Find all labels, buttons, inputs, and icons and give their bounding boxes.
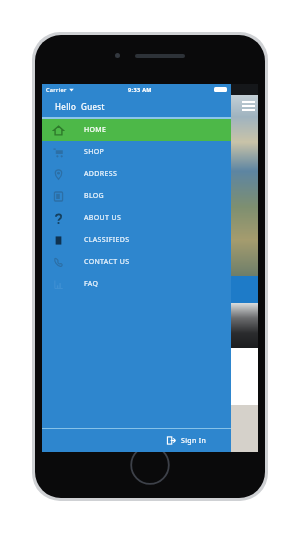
button[interactable]: HOME xyxy=(42,119,231,141)
staticText: BLOG xyxy=(84,191,105,201)
button[interactable]: Sign In xyxy=(42,429,231,452)
button[interactable]: Open navigation menu xyxy=(238,96,258,116)
staticText: HOME xyxy=(84,125,107,135)
staticText: ABOUT US xyxy=(84,213,122,223)
staticText: SHOP xyxy=(84,147,105,157)
staticText: Carrier xyxy=(46,86,67,93)
staticText: ADDRESS xyxy=(84,169,118,179)
button[interactable]: FAQ xyxy=(42,273,231,295)
staticText: Hello Guest xyxy=(55,101,105,112)
staticText: CLASSIFIEDS xyxy=(84,235,130,245)
button[interactable]: ADDRESS xyxy=(42,163,231,185)
button[interactable]: CLASSIFIEDS xyxy=(42,229,231,251)
staticText: FAQ xyxy=(84,279,99,289)
staticText: CONTACT US xyxy=(84,257,130,267)
staticText: 9:33 AM xyxy=(128,86,152,93)
button[interactable]: SHOP xyxy=(42,141,231,163)
button[interactable]: BLOG xyxy=(42,185,231,207)
staticText: Sign In xyxy=(181,436,207,446)
button[interactable]: ABOUT US xyxy=(42,207,231,229)
button[interactable]: CONTACT US xyxy=(42,251,231,273)
